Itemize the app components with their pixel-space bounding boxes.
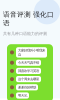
staticText: 这个周末去哪里	[18, 77, 39, 81]
staticText: 明天见	[18, 93, 27, 98]
staticText: 语音评测 强化口语	[3, 10, 54, 27]
staticText: 谢谢你的帮助	[18, 85, 36, 89]
staticText: 大家好我叫小明我来自	[18, 48, 45, 57]
staticText: 共有几种口语能力的评测	[3, 31, 47, 36]
staticText: 今天天气真不错	[18, 61, 39, 65]
staticText: 我喜欢学习英语	[18, 69, 39, 73]
